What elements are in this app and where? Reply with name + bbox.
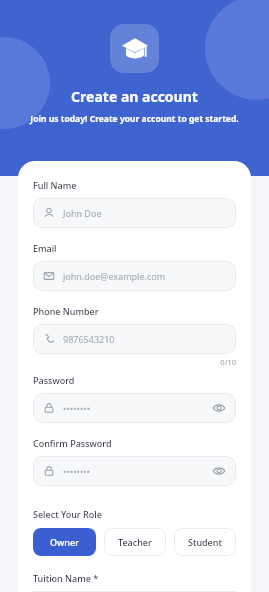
- staticText: john.doe@example.com: [63, 270, 166, 282]
- staticText: Owner: [50, 536, 79, 548]
- button[interactable]: 9876543210: [33, 324, 236, 354]
- staticText: 9876543210: [63, 333, 115, 345]
- button[interactable]: john.doe@example.com: [33, 261, 236, 291]
- button[interactable]: John Doe: [33, 198, 236, 228]
- staticText: Teacher: [118, 536, 152, 548]
- staticText: Email: [33, 242, 57, 254]
- button[interactable]: Teacher: [104, 528, 166, 556]
- button[interactable]: ••••••••: [33, 393, 236, 423]
- staticText: ••••••••: [63, 465, 91, 477]
- button[interactable]: Owner: [33, 528, 96, 556]
- button[interactable]: Show password: [212, 401, 226, 415]
- staticText: Confirm Password: [33, 437, 112, 449]
- staticText: Select Your Role: [33, 508, 102, 520]
- staticText: Tuition Name *: [33, 572, 99, 584]
- button[interactable]: ••••••••: [33, 456, 236, 486]
- staticText: Phone Number: [33, 305, 99, 317]
- staticText: Join us today! Create your account to ge…: [0, 113, 269, 125]
- staticText: Password: [33, 374, 75, 386]
- staticText: John Doe: [63, 207, 102, 219]
- staticText: Create an account: [0, 87, 269, 106]
- staticText: Student: [188, 536, 222, 548]
- button[interactable]: Student: [174, 528, 236, 556]
- staticText: 0/10: [33, 357, 236, 367]
- button[interactable]: Show password: [212, 464, 226, 478]
- staticText: ••••••••: [63, 402, 91, 414]
- staticText: Full Name: [33, 179, 77, 191]
